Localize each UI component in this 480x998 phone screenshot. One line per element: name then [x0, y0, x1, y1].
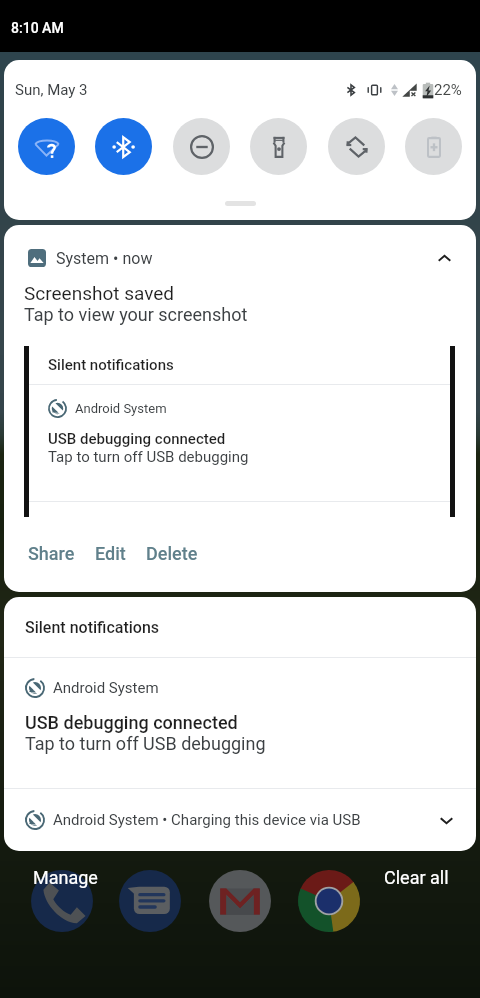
staticText: Share	[28, 543, 75, 564]
staticText: Android System	[75, 401, 167, 416]
button[interactable]: Android System • Charging this device vi…	[4, 789, 476, 851]
button[interactable]: Clear all	[377, 863, 456, 892]
button[interactable]: System • now	[4, 225, 476, 592]
button[interactable]: Do not disturb	[173, 118, 230, 175]
button[interactable]: Bluetooth	[95, 118, 152, 175]
staticText: Manage	[33, 867, 98, 888]
staticText: Android System	[53, 679, 159, 697]
staticText: Tap to view your screenshot	[24, 304, 248, 325]
staticText: Silent notifications	[25, 618, 160, 637]
button[interactable]: Android System	[4, 658, 476, 788]
staticText: Tap to turn off USB debugging	[25, 733, 266, 754]
button[interactable]: Collapse	[432, 246, 456, 270]
button[interactable]: Flashlight	[250, 118, 307, 175]
staticText: USB debugging connected	[48, 430, 226, 448]
staticText: Android System • Charging this device vi…	[53, 811, 361, 829]
button[interactable]: Auto-rotate	[328, 118, 385, 175]
button[interactable]: Manage	[26, 863, 105, 892]
staticText: USB debugging connected	[25, 712, 238, 733]
staticText: Sun, May 3	[15, 81, 88, 99]
staticText: 8:10 AM	[11, 20, 64, 36]
staticText: Screenshot saved	[24, 282, 175, 304]
button[interactable]: Wi-Fi	[18, 118, 75, 175]
staticText: Tap to turn off USB debugging	[48, 448, 249, 466]
button[interactable]: Edit	[85, 537, 136, 570]
staticText: System • now	[56, 249, 153, 268]
staticText: Edit	[95, 543, 126, 564]
button[interactable]: Delete	[136, 537, 208, 570]
button[interactable]: Share	[18, 537, 85, 570]
staticText: Delete	[146, 543, 198, 564]
staticText: 22%	[434, 81, 462, 99]
staticText: Clear all	[384, 867, 449, 888]
button[interactable]: Silent notifications	[4, 597, 476, 657]
button[interactable]: Battery Saver	[405, 118, 462, 175]
staticText: Silent notifications	[48, 356, 174, 374]
other: Expand	[438, 812, 455, 829]
